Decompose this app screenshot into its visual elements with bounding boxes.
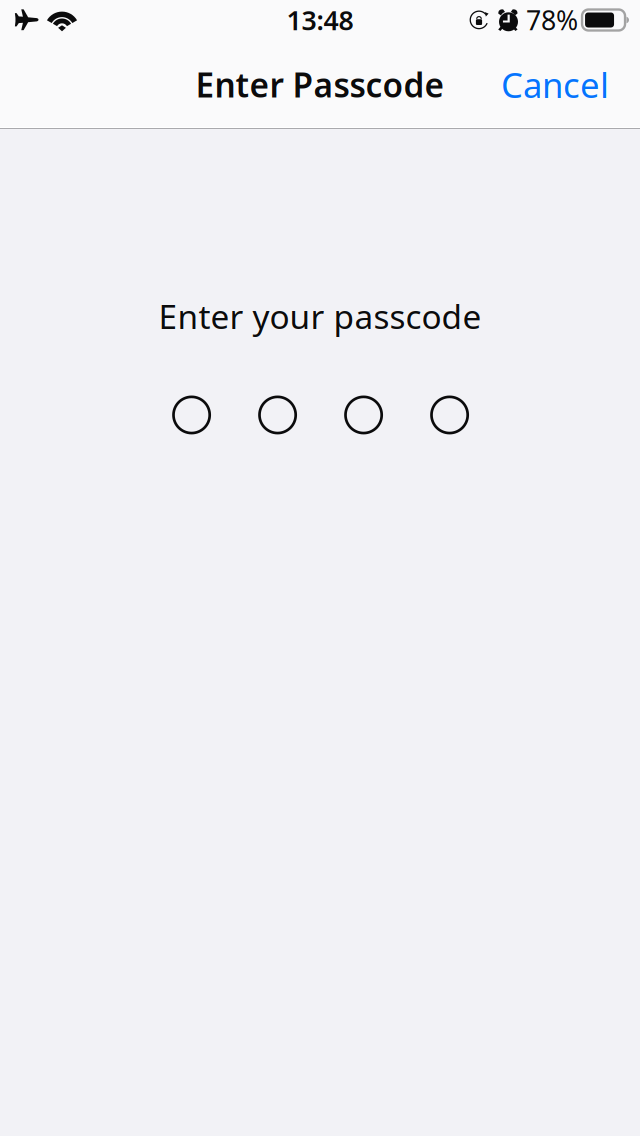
staticText: Enter your passcode: [158, 294, 481, 338]
staticText: 78%: [526, 2, 578, 38]
staticText: Enter Passcode: [195, 62, 444, 107]
staticText: 13:48: [286, 2, 353, 38]
button[interactable]: Cancel: [487, 47, 623, 121]
staticText: Cancel: [501, 61, 609, 107]
